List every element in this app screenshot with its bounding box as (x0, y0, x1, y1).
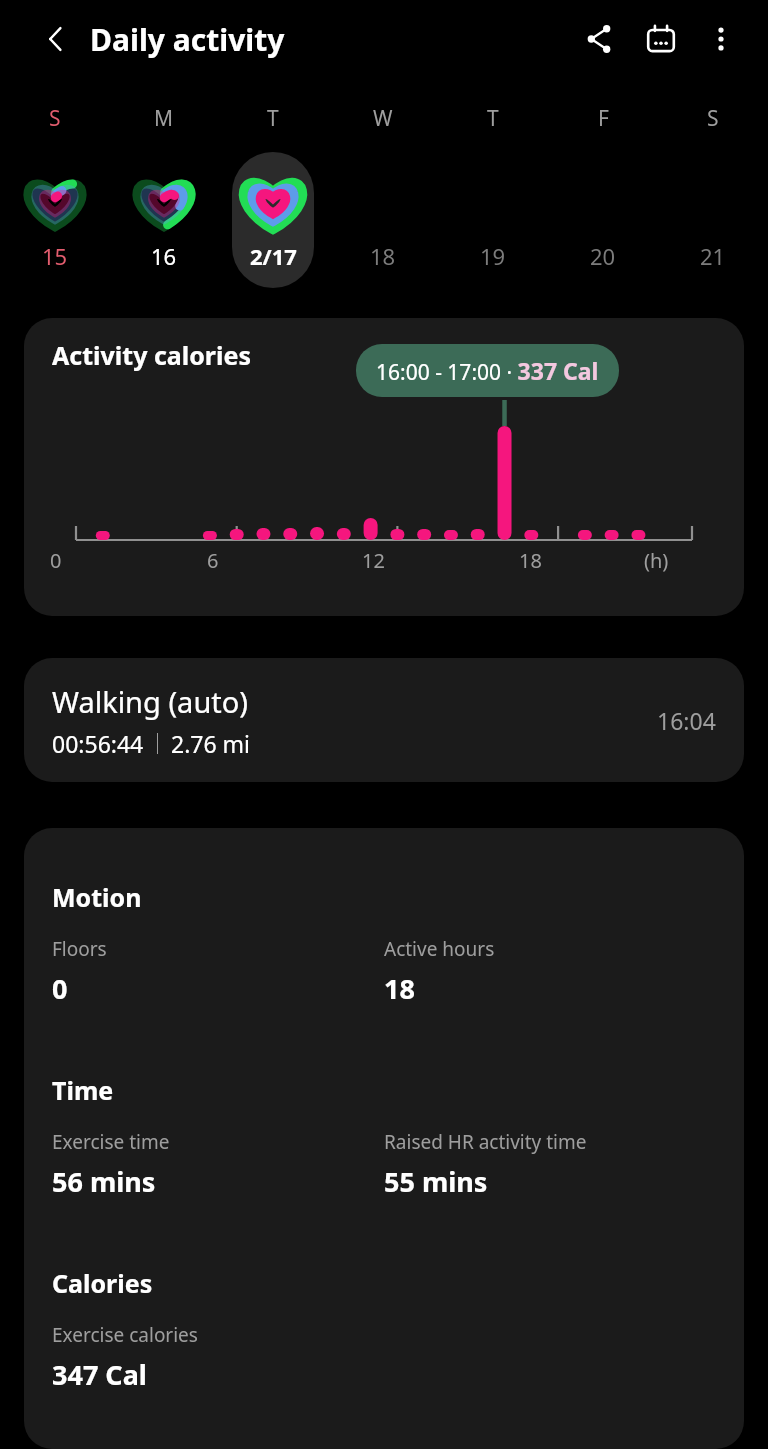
button[interactable]: Walking (auto) (24, 658, 744, 782)
staticText: W (373, 104, 393, 133)
staticText: Exercise time (52, 1129, 170, 1155)
staticText: T (267, 104, 279, 133)
staticText: Time (52, 1073, 114, 1107)
staticText: Activity calories (52, 338, 251, 372)
button[interactable]: Back (36, 19, 76, 59)
button[interactable]: T (438, 104, 548, 290)
staticText: S (49, 104, 61, 133)
staticText: Exercise calories (52, 1322, 198, 1348)
button[interactable]: Share (576, 16, 622, 62)
staticText: 2/17 (250, 241, 297, 271)
staticText: 55 mins (384, 1163, 488, 1200)
staticText: Active hours (384, 936, 495, 962)
staticText: 16:04 (657, 705, 716, 736)
button[interactable]: Activity calories (24, 318, 744, 616)
staticText: M (154, 104, 174, 133)
button[interactable]: S (0, 104, 109, 290)
staticText: 16:00 - 17:00 · 337 Cal (376, 355, 599, 386)
staticText: 12 (362, 547, 385, 574)
staticText: 18 (519, 547, 542, 574)
button[interactable]: S (658, 104, 768, 290)
staticText: 18 (370, 241, 396, 271)
staticText: T (487, 104, 499, 133)
button[interactable]: W (328, 104, 438, 290)
staticText: 2.76 mi (171, 728, 251, 759)
staticText: 347 Cal (52, 1356, 147, 1393)
staticText: 00:56:44 (52, 728, 144, 759)
staticText: 6 (207, 547, 219, 574)
staticText: Motion (52, 880, 142, 914)
staticText: Raised HR activity time (384, 1129, 587, 1155)
button[interactable]: M (109, 104, 218, 290)
button[interactable]: F (548, 104, 658, 290)
staticText: Floors (52, 936, 107, 962)
staticText: S (707, 104, 719, 133)
staticText: F (598, 104, 609, 133)
staticText: 16 (151, 241, 177, 271)
staticText: Walking (auto) (52, 682, 249, 721)
staticText: 0 (52, 970, 68, 1007)
button[interactable]: Calendar (638, 16, 684, 62)
staticText: Calories (52, 1266, 153, 1300)
staticText: 0 (50, 547, 62, 574)
button[interactable]: T (218, 104, 328, 290)
staticText: 56 mins (52, 1163, 156, 1200)
staticText: 19 (480, 241, 506, 271)
button[interactable]: More options (698, 16, 744, 62)
staticText: 15 (42, 241, 68, 271)
staticText: 20 (590, 241, 616, 271)
staticText: 21 (700, 241, 726, 271)
staticText: Daily activity (90, 19, 285, 60)
staticText: 18 (384, 970, 415, 1007)
staticText: (h) (644, 547, 669, 574)
